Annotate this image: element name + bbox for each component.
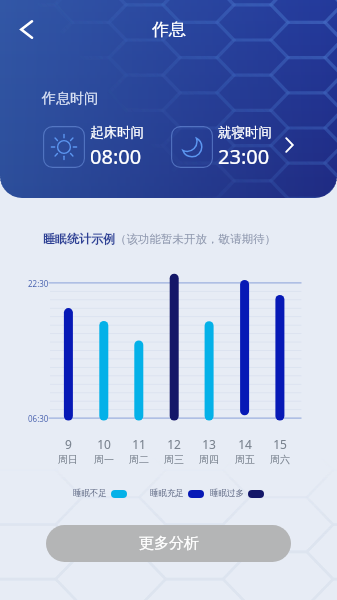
staticText: 睡眠过多 (210, 488, 244, 499)
button[interactable]: Back (0, 0, 52, 58)
staticText: 22:30 (28, 278, 49, 289)
staticText: （该功能暂未开放，敬请期待） (115, 232, 276, 246)
staticText: 周日 (58, 453, 78, 466)
button[interactable]: 更多分析 (46, 525, 291, 562)
staticText: 12 (167, 436, 181, 452)
staticText: 周六 (270, 453, 290, 466)
staticText: 周五 (235, 453, 255, 466)
staticText: 作息时间 (42, 90, 98, 108)
staticText: 起床时间 (90, 124, 144, 141)
staticText: 06:30 (28, 413, 49, 424)
button[interactable]: Edit schedule (276, 131, 302, 159)
staticText: 周四 (199, 453, 219, 466)
staticText: 睡眠充足 (150, 488, 184, 499)
staticText: 23:00 (218, 143, 270, 170)
staticText: 周一 (94, 453, 114, 466)
staticText: 11 (132, 436, 146, 452)
staticText: 就寝时间 (218, 124, 272, 141)
staticText: 08:00 (90, 143, 142, 170)
staticText: 作息 (152, 19, 186, 40)
staticText: 9 (65, 436, 72, 452)
staticText: 更多分析 (139, 534, 199, 553)
staticText: 周二 (129, 453, 149, 466)
staticText: 睡眠统计示例 (43, 231, 115, 246)
staticText: 14 (238, 436, 252, 452)
staticText: 13 (202, 436, 216, 452)
staticText: 10 (97, 436, 111, 452)
staticText: 周三 (164, 453, 184, 466)
staticText: 15 (273, 436, 287, 452)
staticText: 睡眠不足 (73, 488, 107, 499)
